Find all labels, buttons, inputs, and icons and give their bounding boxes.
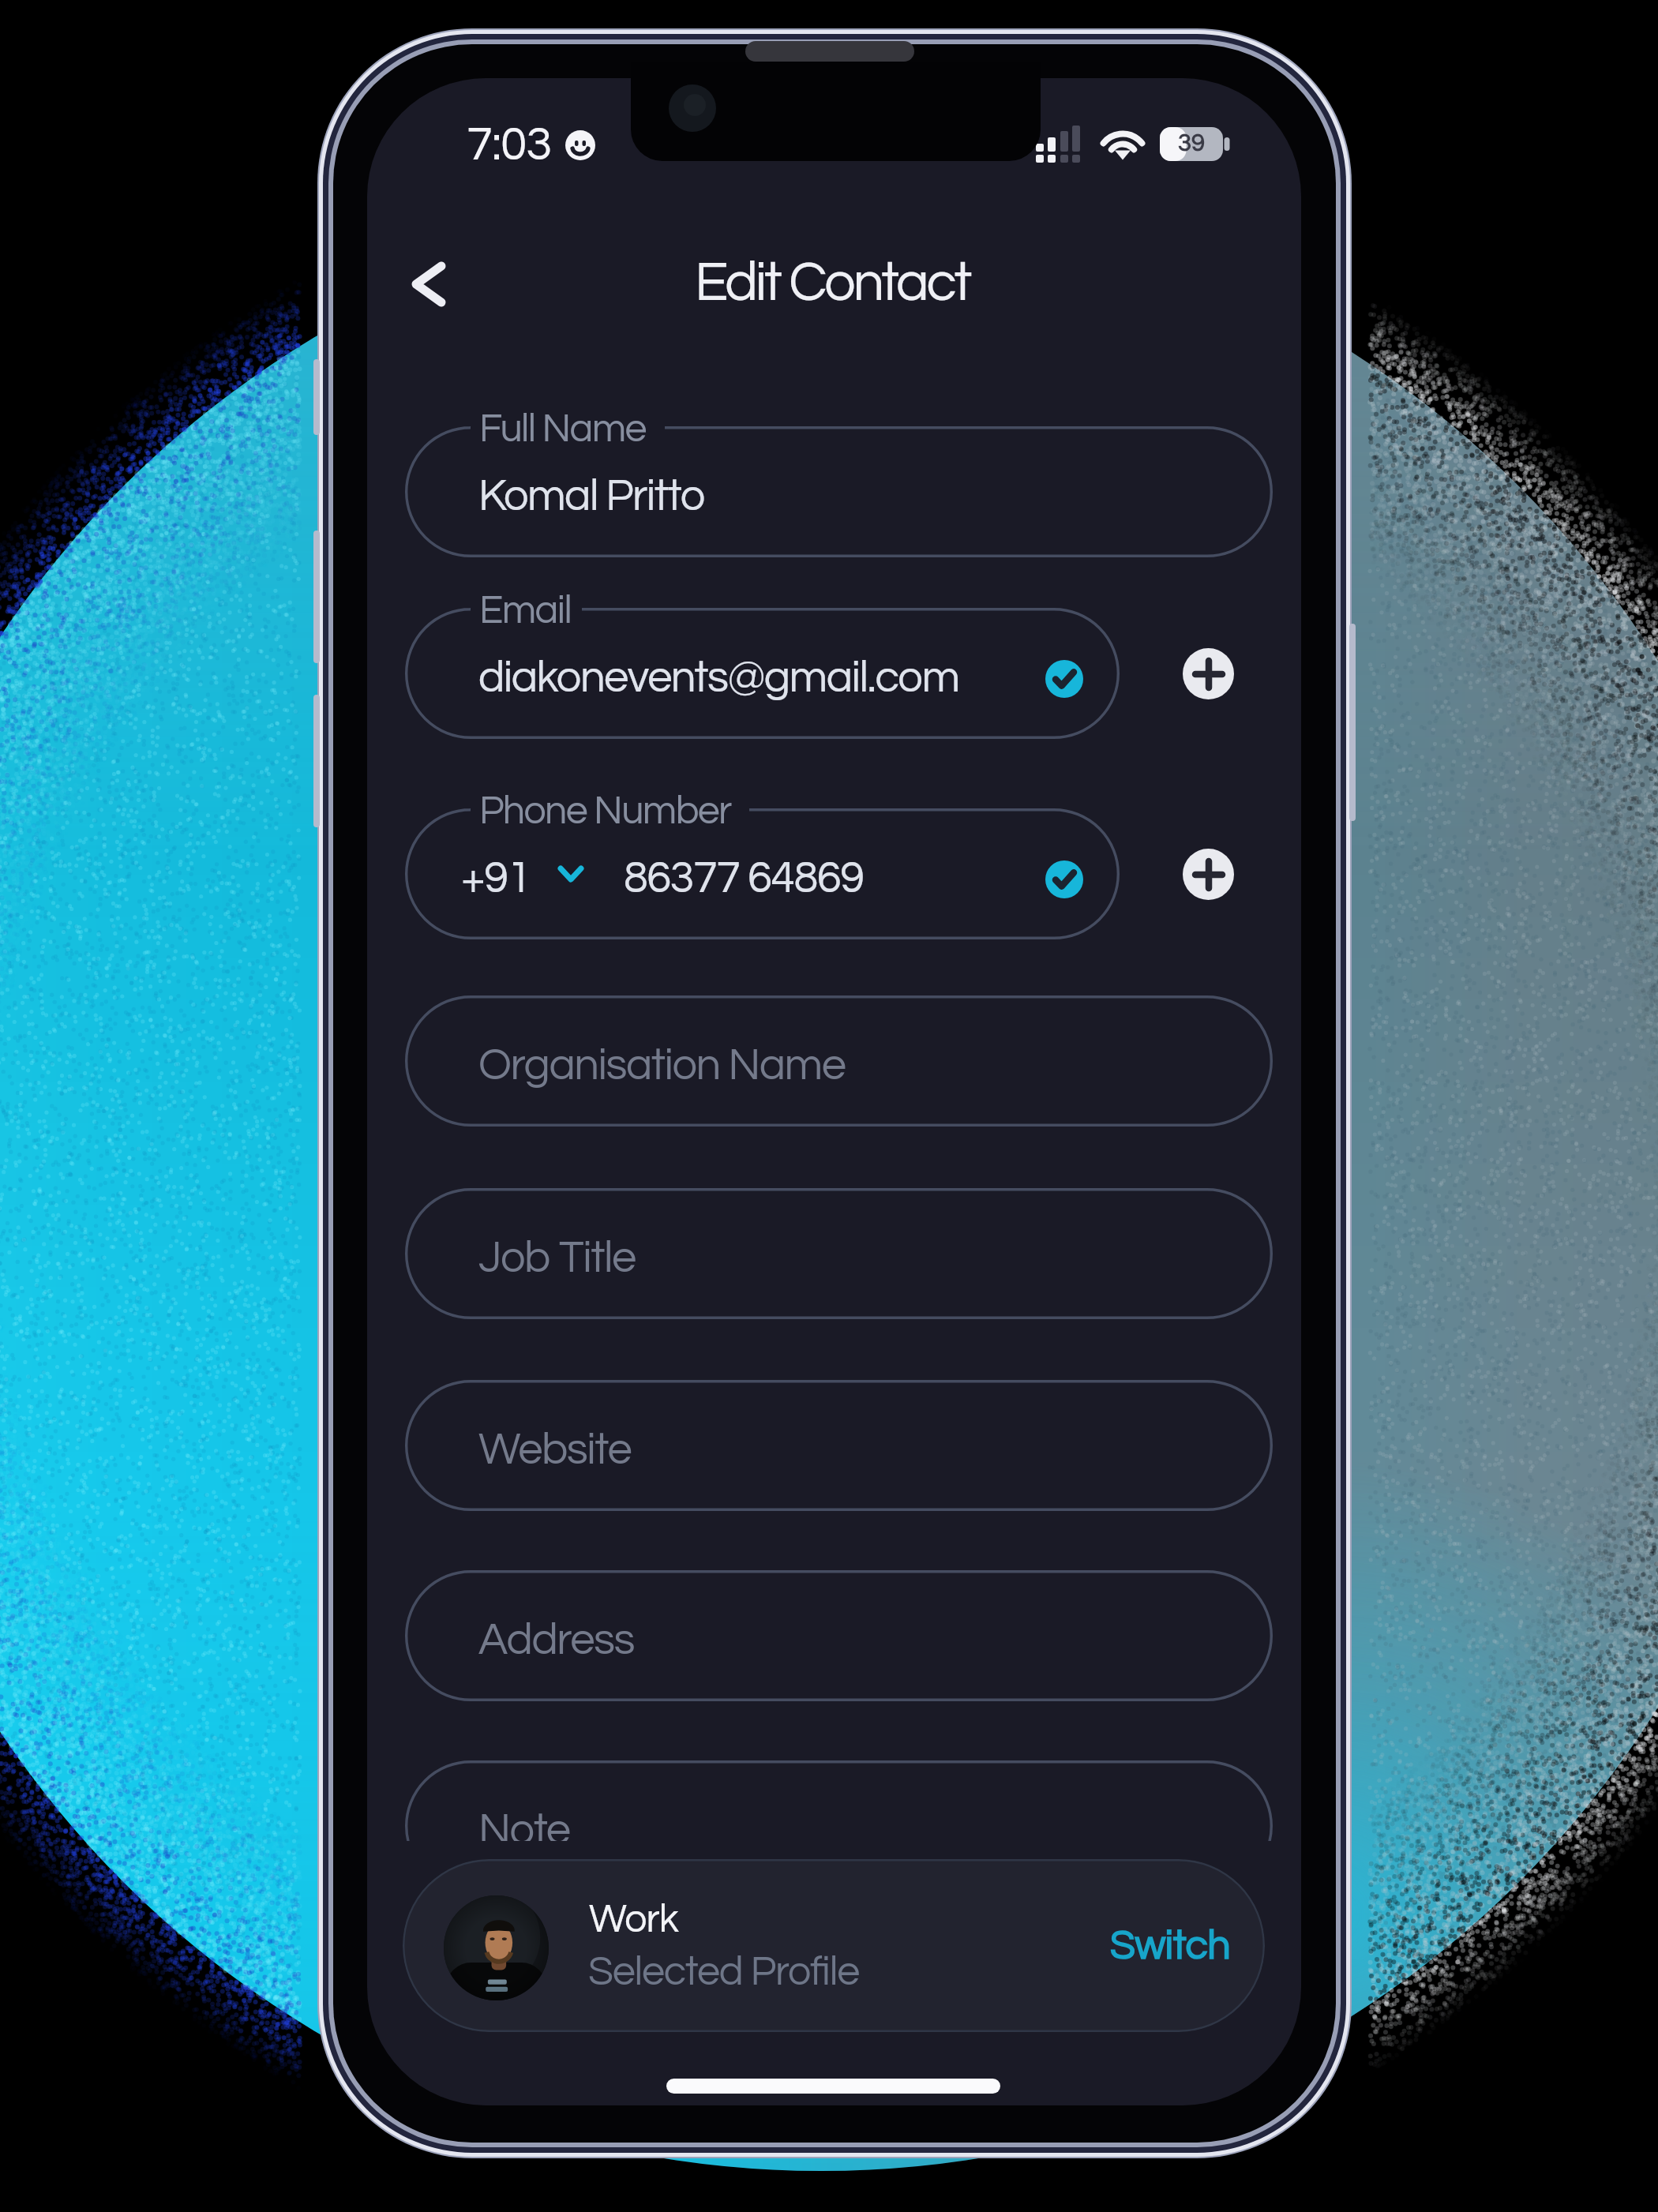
button[interactable]: Work: [403, 1859, 1265, 2032]
button[interactable]: Full Name: [405, 426, 1273, 557]
button[interactable]: Add phone number: [1183, 849, 1234, 900]
staticText: 39: [1178, 131, 1206, 156]
staticText: Phone Number: [479, 791, 731, 832]
button[interactable]: Job Title: [405, 1188, 1273, 1319]
staticText: 7:03: [467, 121, 552, 170]
staticText: 86377 64869: [624, 856, 864, 902]
staticText: Website: [478, 1427, 632, 1473]
staticText: Full Name: [479, 409, 646, 450]
staticText: Organisation Name: [478, 1043, 846, 1089]
button[interactable]: Phone Number: [405, 808, 1120, 939]
button[interactable]: Switch: [1099, 1914, 1241, 1978]
button[interactable]: Website: [405, 1380, 1273, 1511]
staticText: +91: [461, 856, 531, 902]
button[interactable]: Add email: [1183, 648, 1234, 699]
staticText: Note: [478, 1808, 570, 1841]
staticText: Address: [478, 1618, 634, 1663]
button[interactable]: Organisation Name: [405, 995, 1273, 1127]
button[interactable]: Address: [405, 1570, 1273, 1701]
staticText: diakonevents@gmail.com: [478, 655, 959, 701]
button[interactable]: Note: [405, 1760, 1273, 1841]
button[interactable]: Email: [405, 608, 1120, 739]
staticText: Komal Pritto: [478, 474, 704, 519]
button[interactable]: Back: [377, 237, 480, 332]
staticText: Work: [589, 1899, 678, 1940]
staticText: Selected Profile: [588, 1951, 859, 1993]
staticText: Email: [479, 590, 572, 632]
staticText: Switch: [1110, 1925, 1230, 1967]
staticText: Edit Contact: [695, 255, 970, 312]
staticText: Job Title: [478, 1235, 636, 1281]
